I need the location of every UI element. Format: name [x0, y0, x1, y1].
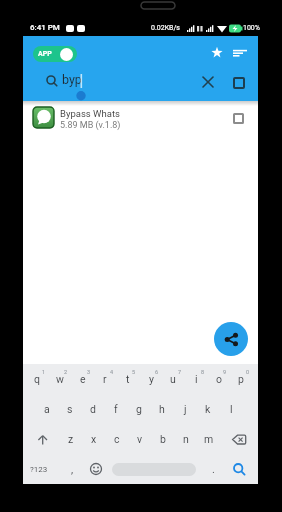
staticText: 5.89 MB (v.1.8) — [60, 120, 121, 131]
staticText: o — [216, 373, 222, 385]
button[interactable]: l — [220, 396, 242, 422]
staticText: w — [56, 373, 64, 385]
staticText: s — [67, 403, 73, 415]
button[interactable]: o — [208, 366, 230, 392]
staticText: ?123 — [30, 465, 48, 474]
button[interactable]: p — [230, 366, 252, 392]
button[interactable] — [36, 433, 50, 447]
staticText: z — [68, 433, 74, 445]
staticText: byp — [62, 72, 82, 87]
staticText: 1 — [42, 369, 46, 375]
staticText: c — [114, 433, 120, 445]
button[interactable] — [201, 75, 215, 89]
staticText: n — [183, 433, 189, 445]
button[interactable] — [214, 322, 248, 356]
button[interactable]: k — [197, 396, 219, 422]
staticText: x — [91, 433, 97, 445]
button[interactable]: t — [117, 366, 139, 392]
button[interactable] — [88, 461, 104, 477]
staticText: v — [137, 433, 143, 445]
staticText: e — [80, 373, 86, 385]
staticText: 4 — [110, 369, 114, 375]
button[interactable]: m — [198, 426, 220, 452]
button[interactable]: r — [94, 366, 116, 392]
button[interactable] — [231, 46, 249, 60]
staticText: 7 — [178, 369, 182, 375]
staticText: h — [159, 403, 165, 415]
button[interactable]: c — [106, 426, 128, 452]
staticText: i — [195, 373, 198, 385]
button[interactable] — [231, 461, 248, 478]
staticText: 2 — [64, 369, 68, 375]
button[interactable]: w — [49, 366, 71, 392]
staticText: . — [212, 463, 215, 476]
button[interactable]: , — [62, 458, 82, 480]
staticText: Bypass Whats — [60, 108, 120, 119]
button[interactable]: d — [82, 396, 104, 422]
staticText: , — [71, 463, 74, 476]
staticText: y — [149, 373, 154, 385]
button[interactable]: y — [140, 366, 162, 392]
staticText: 3 — [87, 369, 91, 375]
staticText: 100% — [243, 24, 260, 32]
button[interactable] — [233, 113, 244, 124]
staticText: 0.02KB/s — [151, 24, 180, 32]
staticText: p — [238, 373, 244, 385]
staticText: a — [44, 403, 50, 415]
button[interactable]: h — [151, 396, 173, 422]
staticText: g — [136, 403, 142, 415]
button[interactable]: v — [129, 426, 151, 452]
staticText: k — [205, 403, 211, 415]
button[interactable] — [112, 463, 196, 476]
staticText: r — [103, 373, 107, 385]
button[interactable] — [208, 44, 226, 62]
button[interactable]: f — [105, 396, 127, 422]
staticText: 5 — [132, 369, 136, 375]
staticText: l — [230, 403, 233, 415]
button[interactable] — [233, 77, 245, 89]
staticText: f — [114, 403, 118, 415]
button[interactable]: s — [59, 396, 81, 422]
button[interactable]: z — [60, 426, 82, 452]
staticText: b — [160, 433, 166, 445]
staticText: 9 — [223, 369, 227, 375]
staticText: j — [184, 403, 187, 415]
staticText: d — [90, 403, 96, 415]
staticText: u — [170, 373, 176, 385]
staticText: m — [204, 433, 214, 445]
staticText: 6:41 PM — [30, 23, 60, 32]
button[interactable]: a — [36, 396, 58, 422]
button[interactable] — [23, 101, 258, 139]
button[interactable] — [33, 46, 77, 62]
button[interactable]: g — [128, 396, 150, 422]
button[interactable]: q — [26, 366, 48, 392]
button[interactable]: x — [83, 426, 105, 452]
button[interactable]: i — [185, 366, 207, 392]
staticText: APP — [38, 50, 52, 58]
button[interactable] — [231, 434, 248, 446]
staticText: q — [34, 373, 40, 385]
button[interactable]: j — [174, 396, 196, 422]
button[interactable]: ?123 — [26, 458, 52, 480]
staticText: 6 — [155, 369, 159, 375]
button[interactable]: u — [162, 366, 184, 392]
staticText: t — [126, 373, 130, 385]
staticText: 0 — [246, 369, 250, 375]
button[interactable]: n — [175, 426, 197, 452]
button[interactable]: b — [152, 426, 174, 452]
button[interactable]: . — [206, 458, 220, 480]
button[interactable]: e — [72, 366, 94, 392]
staticText: 8 — [201, 369, 205, 375]
